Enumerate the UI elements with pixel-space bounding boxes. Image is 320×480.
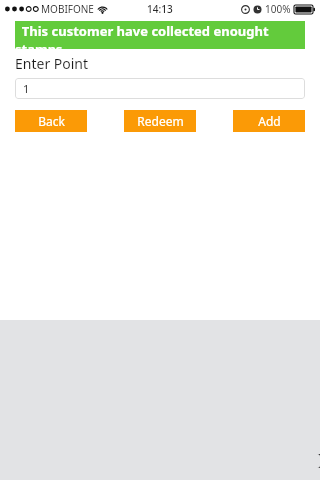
staticText: Back [38,113,65,129]
button[interactable]: Back [15,110,87,132]
staticText: MOBIFONE [41,2,94,16]
staticText: Redeem [137,113,184,129]
staticText: Enter Point [15,54,89,73]
staticText: 100% [265,2,291,16]
button[interactable]: Redeem [124,110,196,132]
button[interactable]: Add [233,110,305,132]
staticText: This customer have collected enought sta… [15,22,305,49]
button[interactable]: 1 [15,78,305,99]
staticText: Add [258,113,281,129]
staticText: 14:13 [147,2,173,16]
staticText: 1 [23,81,30,96]
